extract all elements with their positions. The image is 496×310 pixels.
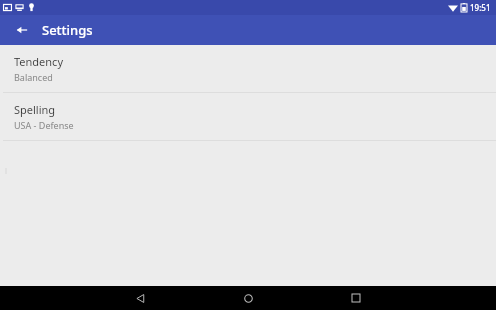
button[interactable]: Home (231, 286, 265, 310)
staticText: 19:51 (470, 2, 491, 13)
button[interactable]: Tendency (0, 45, 496, 92)
staticText: Tendency (14, 54, 64, 69)
staticText: Settings (42, 21, 93, 39)
button[interactable]: Spelling (0, 93, 496, 140)
button[interactable]: Recent apps (339, 286, 373, 310)
staticText: Spelling (14, 102, 56, 117)
button[interactable]: Back (123, 286, 157, 310)
staticText: Balanced (14, 71, 53, 83)
button[interactable]: Navigate up (11, 19, 33, 41)
staticText: USA - Defense (14, 119, 74, 131)
